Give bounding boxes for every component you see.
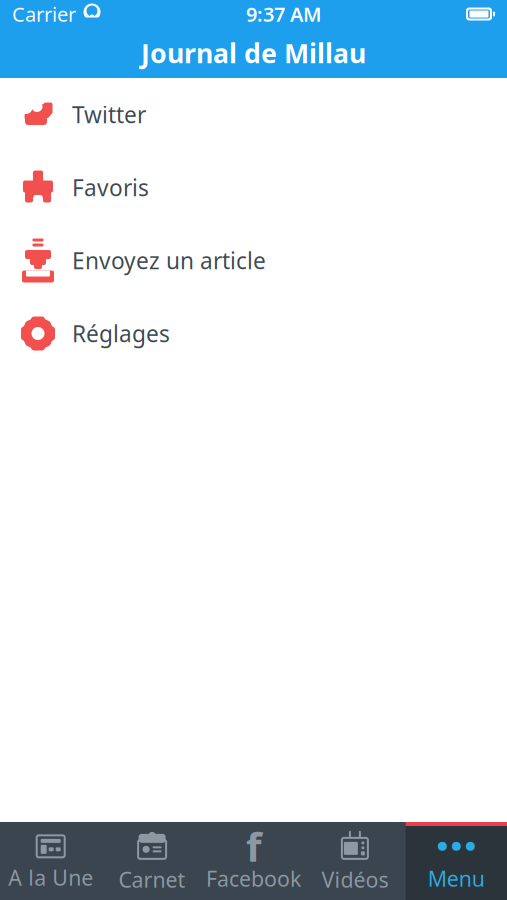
- button[interactable]: A la Une: [0, 822, 101, 900]
- staticText: f: [246, 820, 261, 873]
- staticText: A la Une: [8, 863, 93, 892]
- staticText: Vidéos: [321, 865, 388, 894]
- staticText: Carrier: [12, 1, 76, 27]
- button[interactable]: Envoyez un article: [0, 224, 507, 297]
- staticText: Carnet: [119, 865, 186, 894]
- staticText: Envoyez un article: [72, 245, 266, 275]
- button[interactable]: f: [203, 822, 304, 900]
- button[interactable]: Menu: [406, 822, 507, 900]
- staticText: Journal de Millau: [141, 35, 366, 71]
- staticText: Twitter: [72, 99, 146, 129]
- staticText: Menu: [428, 864, 485, 893]
- staticText: Facebook: [206, 864, 301, 893]
- button[interactable]: Carnet: [101, 822, 203, 900]
- button[interactable]: Vidéos: [304, 822, 406, 900]
- button[interactable]: Twitter: [0, 78, 507, 151]
- staticText: Réglages: [72, 318, 170, 348]
- staticText: 9:37 AM: [246, 1, 322, 27]
- button[interactable]: Réglages: [0, 297, 507, 370]
- button[interactable]: Favoris: [0, 151, 507, 224]
- staticText: Favoris: [72, 172, 149, 202]
